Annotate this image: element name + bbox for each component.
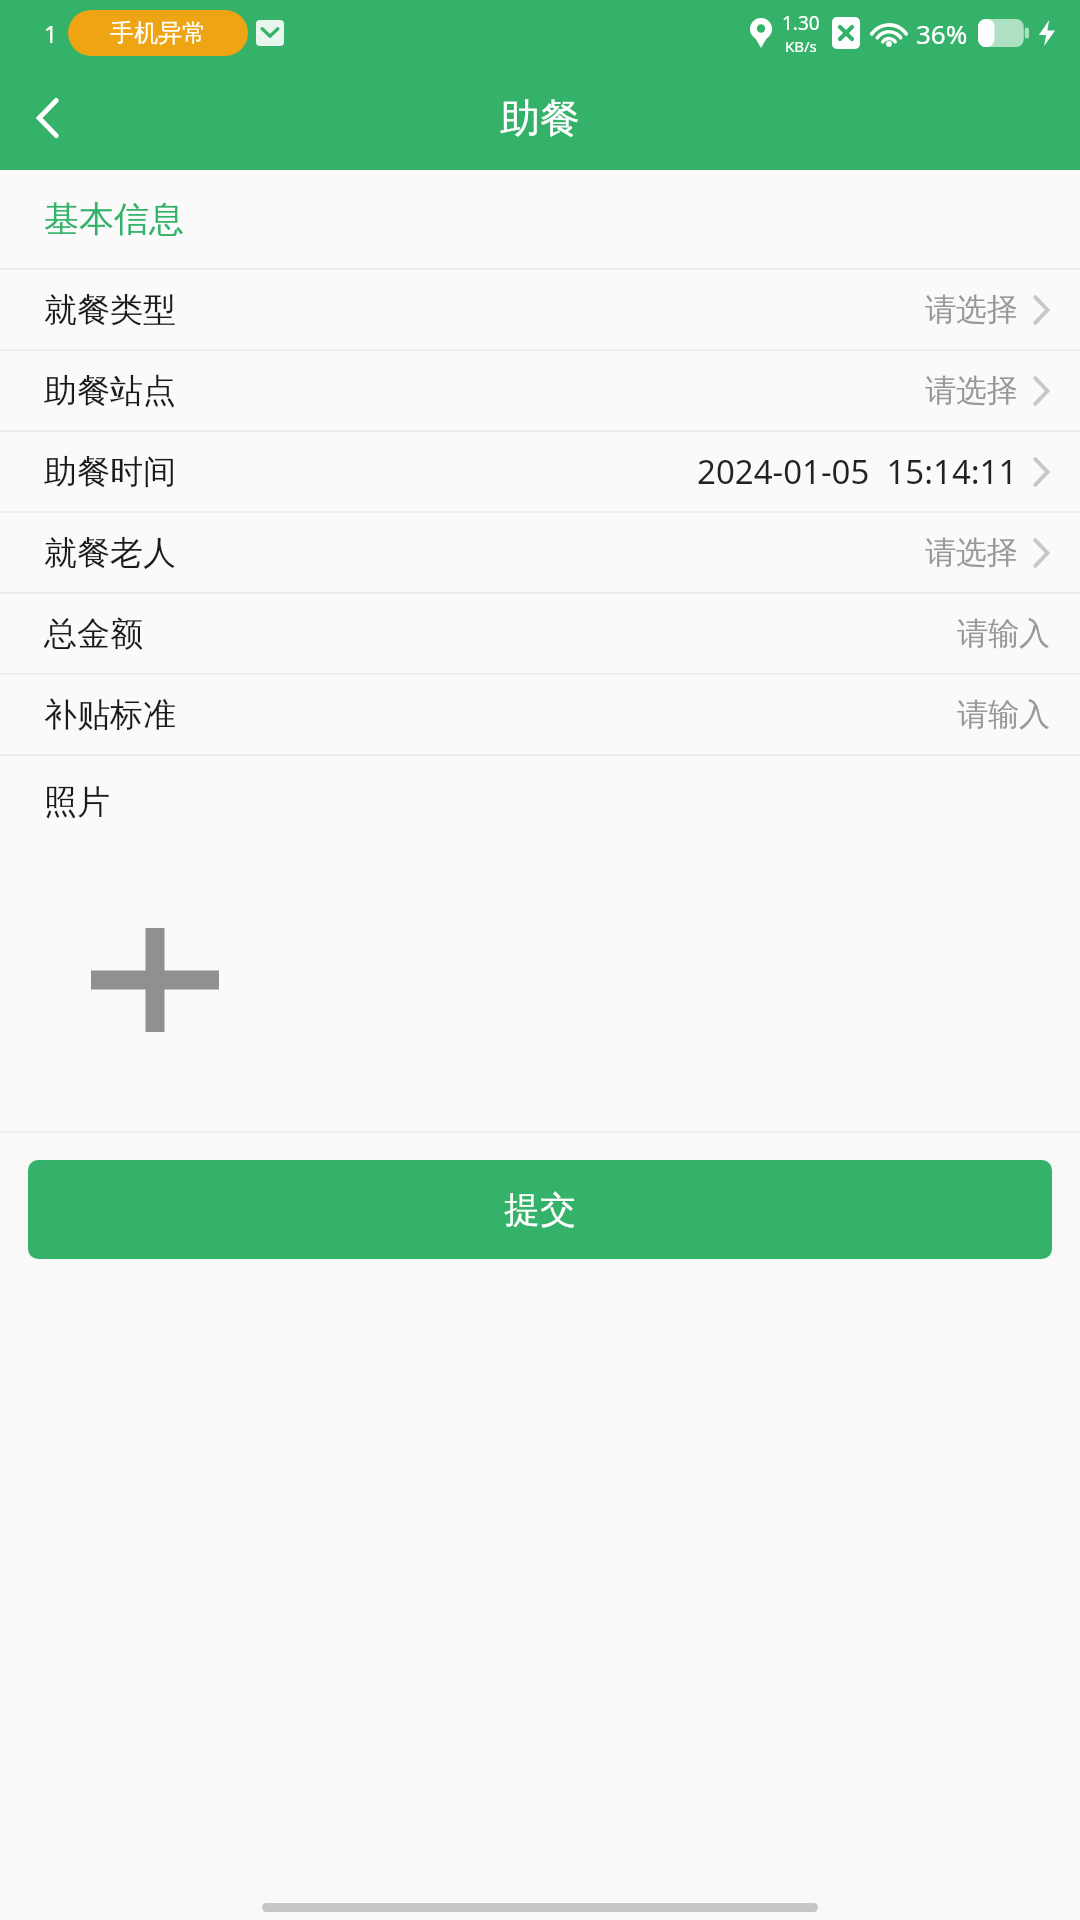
staticText: 请选择: [925, 371, 1018, 410]
staticText: 请输入: [957, 695, 1050, 734]
staticText: 1.30: [782, 10, 820, 36]
staticText: 提交: [504, 1187, 576, 1232]
staticText: 照片: [44, 781, 110, 823]
staticText: 手机异常: [110, 18, 206, 48]
staticText: 2024-01-05 15:14:11: [697, 449, 1018, 494]
staticText: 请输入: [957, 614, 1050, 653]
staticText: 请选择: [925, 533, 1018, 572]
button[interactable]: Add photo: [55, 890, 255, 1070]
button[interactable]: 就餐类型: [0, 270, 1080, 349]
staticText: 助餐: [500, 93, 580, 143]
staticText: KB/s: [785, 36, 817, 56]
staticText: 助餐站点: [44, 370, 176, 412]
staticText: 助餐时间: [44, 451, 176, 493]
button[interactable]: 补贴标准: [0, 675, 1080, 754]
staticText: 就餐类型: [44, 289, 176, 331]
staticText: 补贴标准: [44, 694, 176, 736]
button[interactable]: 就餐老人: [0, 513, 1080, 592]
button[interactable]: 助餐站点: [0, 351, 1080, 430]
staticText: 36%: [916, 16, 968, 51]
button[interactable]: 提交: [28, 1160, 1052, 1259]
staticText: 就餐老人: [44, 532, 176, 574]
staticText: 总金额: [44, 613, 143, 655]
button[interactable]: Back: [0, 70, 96, 166]
button[interactable]: 助餐时间: [0, 432, 1080, 511]
staticText: 基本信息: [44, 197, 184, 241]
staticText: 1: [44, 18, 58, 49]
staticText: 请选择: [925, 290, 1018, 329]
button[interactable]: 总金额: [0, 594, 1080, 673]
